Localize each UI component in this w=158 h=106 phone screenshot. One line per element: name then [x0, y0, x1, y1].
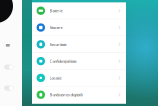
button[interactable]: Toggle [4, 86, 14, 91]
staticText: Securitate [50, 42, 67, 47]
staticText: Locație [50, 75, 62, 81]
button[interactable]: Securitate [32, 36, 126, 53]
staticText: Bunăstarea digitală [50, 92, 83, 97]
button[interactable]: Locație [32, 70, 126, 87]
staticText: Stocare [50, 25, 63, 30]
button[interactable]: Confidențialitate [32, 53, 126, 70]
button[interactable]: Bunăstarea digitală [32, 87, 126, 103]
button[interactable]: Stocare [32, 19, 126, 36]
staticText: Baterie [50, 8, 63, 13]
button[interactable]: Baterie [32, 3, 126, 19]
staticText: Confidențialitate [50, 58, 77, 64]
button[interactable]: Toggle [4, 65, 14, 70]
